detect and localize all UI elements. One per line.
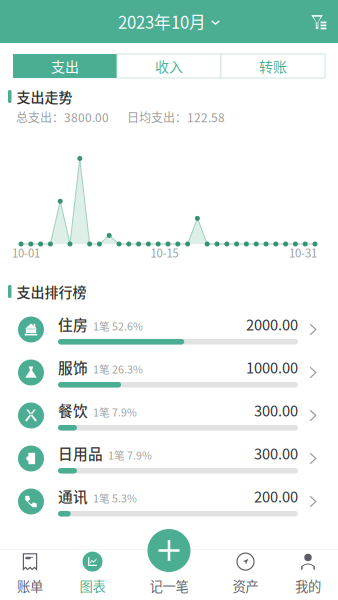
- staticText: 10-15: [150, 244, 178, 261]
- staticText: 资产: [232, 576, 258, 595]
- button[interactable]: 我的: [278, 549, 338, 600]
- staticText: 2000.00: [246, 313, 298, 335]
- button[interactable]: 记一笔: [125, 549, 213, 600]
- button[interactable]: 收入: [117, 54, 221, 78]
- button[interactable]: 记一笔: [147, 529, 190, 572]
- staticText: 通讯: [58, 485, 88, 507]
- staticText: 支出排行榜: [16, 281, 86, 302]
- staticText: 1笔 7.9%: [108, 447, 152, 463]
- staticText: 日用品: [58, 442, 103, 464]
- staticText: 我的: [295, 576, 321, 595]
- staticText: 1000.00: [246, 356, 298, 378]
- button[interactable]: 支出: [13, 54, 117, 78]
- staticText: 2023年10月: [118, 9, 206, 33]
- staticText: 1笔 26.3%: [93, 361, 143, 377]
- staticText: 1笔 52.6%: [93, 318, 143, 334]
- staticText: 日均支出：122.58: [127, 108, 225, 126]
- staticText: 收入: [155, 56, 183, 76]
- staticText: 服饰: [58, 356, 88, 378]
- staticText: 300.00: [254, 399, 298, 421]
- staticText: 餐饮: [58, 399, 88, 421]
- button[interactable]: 账单: [0, 549, 60, 600]
- button[interactable]: 通讯: [0, 480, 338, 523]
- button[interactable]: 服饰: [0, 351, 338, 394]
- staticText: 记一笔: [149, 576, 188, 595]
- staticText: 支出走势: [16, 86, 72, 107]
- staticText: 总支出：3800.00: [16, 108, 109, 126]
- button[interactable]: 筛选: [300, 0, 338, 43]
- button[interactable]: 转账: [221, 54, 325, 78]
- staticText: 1笔 7.9%: [93, 404, 137, 420]
- button[interactable]: 资产: [213, 549, 278, 600]
- staticText: 住房: [58, 313, 88, 335]
- staticText: 10-31: [289, 244, 317, 261]
- staticText: 300.00: [254, 442, 298, 464]
- staticText: 1笔 5.3%: [93, 490, 137, 506]
- staticText: 10-01: [12, 244, 40, 261]
- button[interactable]: 2023年10月: [106, 0, 232, 43]
- staticText: 支出: [51, 56, 79, 76]
- staticText: 200.00: [254, 485, 298, 507]
- button[interactable]: 日用品: [0, 437, 338, 480]
- button[interactable]: 住房: [0, 308, 338, 351]
- staticText: 图表: [79, 576, 105, 595]
- button[interactable]: 图表: [60, 549, 125, 600]
- staticText: 账单: [17, 576, 43, 595]
- button[interactable]: 餐饮: [0, 394, 338, 437]
- staticText: 转账: [259, 56, 287, 76]
